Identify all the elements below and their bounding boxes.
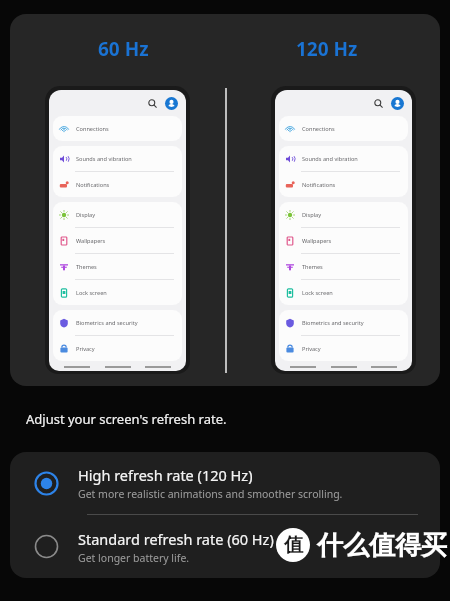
staticText: Biometrics and security bbox=[76, 319, 138, 327]
button[interactable]: Account bbox=[165, 97, 178, 110]
staticText: Get longer battery life. bbox=[78, 551, 190, 565]
button[interactable]: Connections bbox=[53, 116, 182, 141]
button[interactable]: Biometrics and security bbox=[279, 310, 408, 335]
staticText: 值 bbox=[284, 533, 303, 557]
staticText: Notifications bbox=[76, 181, 110, 189]
button[interactable]: Lock screen bbox=[279, 280, 408, 305]
staticText: Privacy bbox=[76, 345, 95, 353]
button[interactable]: Sounds and vibration bbox=[279, 146, 408, 171]
staticText: Notifications bbox=[302, 181, 336, 189]
staticText: Wallpapers bbox=[76, 237, 106, 245]
staticText: Connections bbox=[302, 125, 335, 133]
staticText: High refresh rate (120 Hz) bbox=[78, 465, 253, 485]
button[interactable]: Privacy bbox=[53, 336, 182, 361]
staticText: Standard refresh rate (60 Hz) bbox=[78, 529, 274, 549]
staticText: Lock screen bbox=[76, 289, 107, 297]
staticText: Connections bbox=[76, 125, 109, 133]
button[interactable]: High refresh rate (120 Hz) bbox=[10, 452, 440, 514]
staticText: 什么值得买 bbox=[317, 529, 447, 562]
staticText: Biometrics and security bbox=[302, 319, 364, 327]
staticText: Get more realistic animations and smooth… bbox=[78, 487, 343, 501]
button[interactable]: Account bbox=[391, 97, 404, 110]
button[interactable]: Wallpapers bbox=[279, 228, 408, 253]
staticText: Adjust your screen's refresh rate. bbox=[26, 410, 227, 428]
staticText: Sounds and vibration bbox=[302, 155, 358, 163]
staticText: 120 Hz bbox=[296, 36, 358, 62]
button[interactable]: Themes bbox=[53, 254, 182, 279]
staticText: Themes bbox=[76, 263, 97, 271]
button[interactable]: Display bbox=[279, 202, 408, 227]
button[interactable]: Connections bbox=[279, 116, 408, 141]
button[interactable]: Lock screen bbox=[53, 280, 182, 305]
staticText: 60 Hz bbox=[98, 36, 149, 62]
button[interactable]: Notifications bbox=[279, 172, 408, 197]
button[interactable]: Wallpapers bbox=[53, 228, 182, 253]
staticText: Wallpapers bbox=[302, 237, 332, 245]
staticText: Display bbox=[76, 211, 96, 219]
staticText: Lock screen bbox=[302, 289, 333, 297]
button[interactable]: Privacy bbox=[279, 336, 408, 361]
button[interactable]: Biometrics and security bbox=[53, 310, 182, 335]
button[interactable]: Themes bbox=[279, 254, 408, 279]
staticText: Themes bbox=[302, 263, 323, 271]
button[interactable]: Standard refresh rate (60 Hz) bbox=[10, 515, 440, 578]
button[interactable]: Search bbox=[145, 96, 159, 110]
button[interactable]: Search bbox=[371, 96, 385, 110]
staticText: Display bbox=[302, 211, 322, 219]
button[interactable]: Notifications bbox=[53, 172, 182, 197]
staticText: Privacy bbox=[302, 345, 321, 353]
button[interactable]: Display bbox=[53, 202, 182, 227]
staticText: Sounds and vibration bbox=[76, 155, 132, 163]
button[interactable]: Sounds and vibration bbox=[53, 146, 182, 171]
